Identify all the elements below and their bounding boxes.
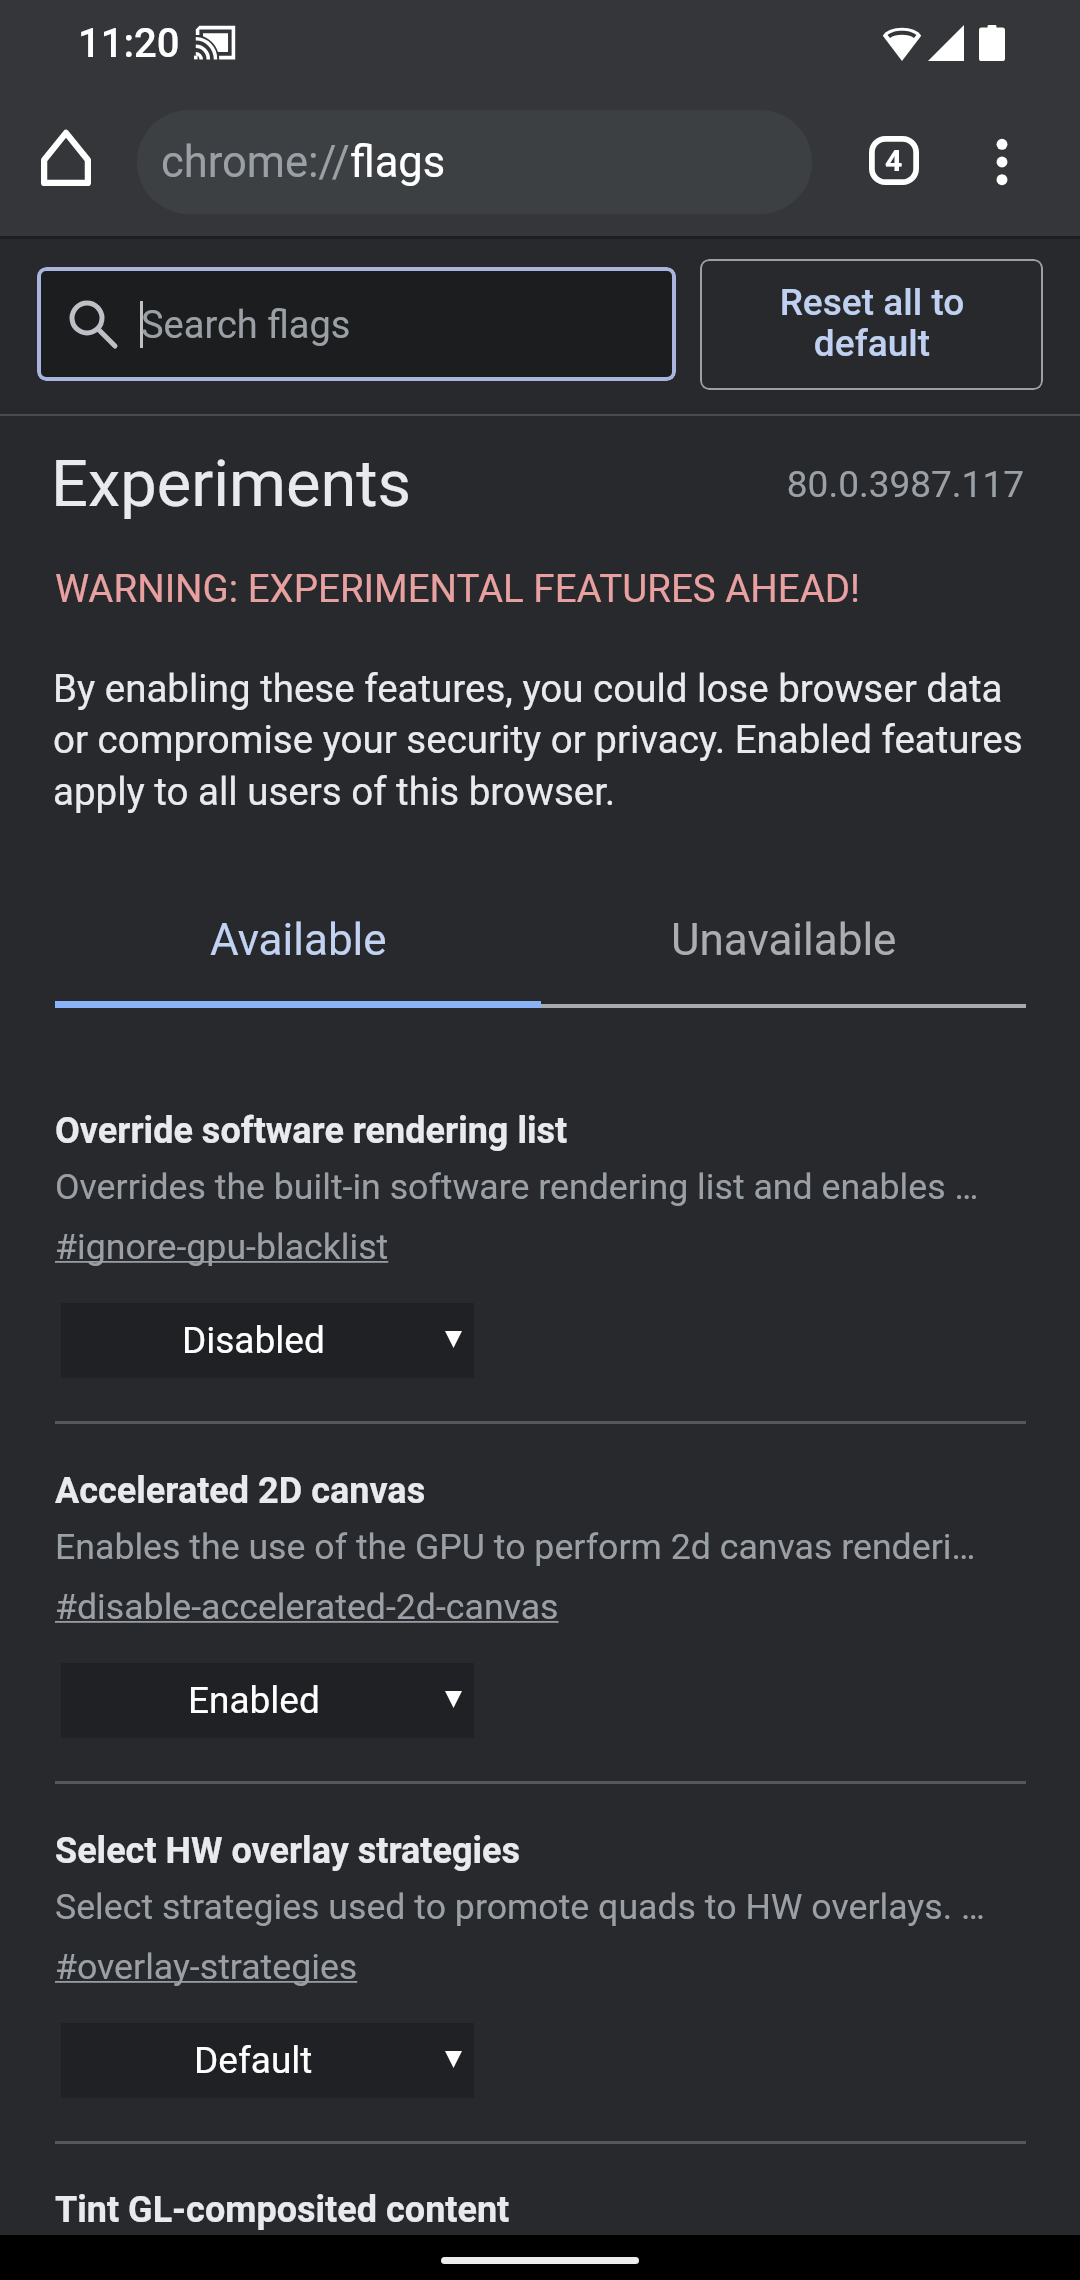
staticText: 11:20 bbox=[78, 20, 180, 67]
button[interactable]: chrome:// bbox=[137, 110, 812, 214]
staticText: WARNING: EXPERIMENTAL FEATURES AHEAD! bbox=[55, 566, 860, 611]
staticText: Search flags bbox=[141, 303, 351, 348]
staticText: Enabled bbox=[188, 1679, 320, 1722]
staticText: Overrides the built-in software renderin… bbox=[55, 1166, 979, 1208]
button[interactable]: Available bbox=[55, 890, 541, 1002]
button[interactable]: Accelerated 2D canvas bbox=[55, 1462, 1026, 1647]
button[interactable]: Select HW overlay strategies bbox=[55, 1822, 1026, 2007]
staticText: By enabling these features, you could lo… bbox=[53, 666, 1033, 814]
button[interactable]: Reset all to default bbox=[700, 259, 1043, 390]
button[interactable]: Unavailable bbox=[541, 890, 1027, 1002]
staticText: Reset all to default bbox=[757, 281, 987, 365]
staticText: chrome:// bbox=[161, 137, 350, 188]
staticText: Disabled bbox=[182, 1319, 325, 1362]
staticText: 4 bbox=[885, 143, 903, 178]
staticText: 80.0.3987.117 bbox=[0, 463, 1024, 506]
button[interactable]: Override software rendering list bbox=[55, 1102, 1026, 1287]
staticText: Override software rendering list bbox=[55, 1110, 568, 1152]
button[interactable]: Enabled bbox=[61, 1663, 474, 1738]
staticText: flags bbox=[350, 137, 446, 188]
staticText: Accelerated 2D canvas bbox=[55, 1470, 426, 1512]
staticText: #disable-accelerated-2d-canvas bbox=[55, 1586, 559, 1628]
button[interactable]: Open tab switcher, 4 tabs bbox=[850, 116, 938, 204]
staticText: Select strategies used to promote quads … bbox=[55, 1886, 985, 1928]
staticText: Default bbox=[194, 2039, 313, 2082]
button[interactable]: Home bbox=[22, 113, 110, 201]
staticText: Experiments bbox=[51, 446, 412, 522]
button[interactable]: Search flags bbox=[37, 267, 676, 381]
button[interactable]: Disabled bbox=[61, 1303, 474, 1378]
staticText: Select HW overlay strategies bbox=[55, 1830, 521, 1872]
staticText: #ignore-gpu-blacklist bbox=[55, 1226, 389, 1268]
staticText: Unavailable bbox=[671, 914, 897, 966]
staticText: Enables the use of the GPU to perform 2d… bbox=[55, 1526, 976, 1568]
staticText: Available bbox=[210, 914, 387, 966]
staticText: #overlay-strategies bbox=[55, 1946, 358, 1988]
button[interactable]: More options bbox=[958, 118, 1046, 206]
button[interactable]: Default bbox=[61, 2023, 474, 2098]
staticText: Tint GL-composited content bbox=[55, 2189, 510, 2231]
